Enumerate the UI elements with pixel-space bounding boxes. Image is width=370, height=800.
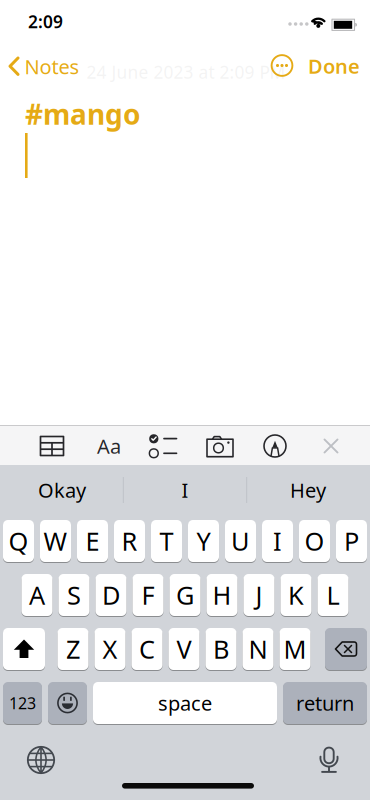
staticText: F [141,578,154,612]
button[interactable] [318,433,344,459]
button[interactable]: B [205,627,236,670]
button[interactable]: R [114,519,145,562]
staticText: Okay [38,477,86,503]
staticText: Done [308,53,360,79]
staticText: Aa [97,433,121,459]
staticText: V [176,632,191,666]
staticText: C [139,632,155,666]
button[interactable]: M [279,627,310,670]
button[interactable]: N [242,627,273,670]
staticText: W [43,524,67,558]
button[interactable]: D [95,573,126,616]
staticText: return [296,690,354,716]
button[interactable]: E [77,519,108,562]
staticText: L [326,578,339,612]
staticText: N [248,632,267,666]
button[interactable]: V [168,627,199,670]
button[interactable] [147,431,181,461]
button[interactable]: I [262,519,293,562]
button[interactable] [48,681,87,724]
button[interactable]: Hey [249,468,367,512]
staticText: E [85,524,99,558]
button[interactable]: H [206,573,237,616]
button[interactable] [325,627,367,670]
button[interactable]: Done [308,49,360,83]
staticText: 2:09 [28,10,63,33]
button[interactable] [37,431,67,461]
staticText: Y [196,524,210,558]
staticText: R [121,524,137,558]
button[interactable] [204,431,236,461]
button[interactable]: J [243,573,274,616]
staticText: T [159,524,173,558]
button[interactable] [3,627,45,670]
button[interactable]: G [169,573,200,616]
staticText: M [283,632,306,666]
button[interactable]: A [21,573,52,616]
staticText: A [29,578,45,612]
button[interactable]: K [280,573,311,616]
button[interactable]: I [126,468,244,512]
staticText: space [158,690,212,716]
staticText: U [231,524,250,558]
staticText: Hey [290,477,326,503]
button[interactable]: P [336,519,367,562]
staticText: I [181,477,188,503]
button[interactable]: T [151,519,182,562]
button[interactable]: Notes [7,49,79,83]
button[interactable]: Okay [3,468,121,512]
button[interactable] [19,738,63,782]
button[interactable]: Q [3,519,34,562]
button[interactable]: U [225,519,256,562]
button[interactable]: Y [188,519,219,562]
staticText: I [273,524,282,558]
button[interactable]: S [58,573,89,616]
staticText: Notes [24,53,79,80]
button[interactable]: space [93,681,277,724]
staticText: B [213,632,229,666]
staticText: 24 June 2023 at 2:09 PM [86,60,285,83]
staticText: K [288,578,304,612]
staticText: X [102,632,117,666]
button[interactable]: Aa [92,431,126,461]
staticText: J [255,578,262,612]
staticText: P [344,524,359,558]
staticText: 123 [9,692,36,714]
button[interactable]: W [40,519,71,562]
staticText: Q [8,524,28,558]
staticText: #mango [25,95,141,133]
button[interactable] [307,736,351,780]
button[interactable]: return [283,681,367,724]
button[interactable] [270,54,293,77]
button[interactable]: L [317,573,348,616]
staticText: H [212,578,231,612]
staticText: S [67,578,81,612]
staticText: G [176,578,194,612]
staticText: Z [66,632,80,666]
staticText: O [304,524,324,558]
button[interactable]: C [131,627,162,670]
staticText: D [102,578,120,612]
button[interactable]: Z [57,627,88,670]
button[interactable]: O [299,519,330,562]
button[interactable]: X [94,627,125,670]
button[interactable]: F [132,573,163,616]
button[interactable] [260,431,290,461]
button[interactable]: 123 [3,681,42,724]
